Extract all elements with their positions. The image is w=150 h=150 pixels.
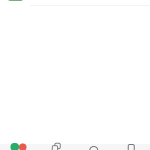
button[interactable]: Recents [75,144,112,150]
button[interactable]: Profile [112,144,150,150]
button[interactable]: Library [37,144,75,150]
button[interactable]: Home [0,144,37,150]
